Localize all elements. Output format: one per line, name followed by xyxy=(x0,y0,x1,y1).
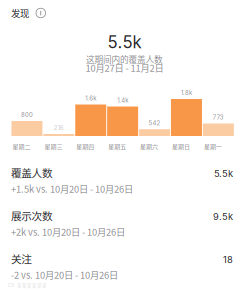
staticText: 星期六 xyxy=(140,142,158,151)
staticText: CF xyxy=(7,282,14,288)
staticText: 某某某某某某 xyxy=(17,282,47,288)
staticText: +1.5k vs. 10月20日 - 10月26日 xyxy=(11,182,133,195)
staticText: 这期间内的覆盖人数 xyxy=(86,53,163,65)
staticText: 星期五 xyxy=(108,142,126,151)
staticText: 星期一 xyxy=(204,142,222,151)
staticText: 展示次数 xyxy=(11,208,53,223)
staticText: 216 xyxy=(54,124,64,131)
staticText: 1.6k xyxy=(85,95,96,102)
staticText: 800 xyxy=(21,111,33,118)
staticText: 773 xyxy=(213,114,224,121)
staticText: -2 vs. 10月20日 - 10月26日 xyxy=(11,268,118,281)
button[interactable]: 发现 xyxy=(11,6,71,20)
button[interactable]: 覆盖人数 xyxy=(0,167,249,193)
staticText: 星期日 xyxy=(172,142,190,151)
staticText: 1.4k xyxy=(117,97,128,104)
staticText: 关注 xyxy=(11,251,32,266)
staticText: 10月27日 - 11月2日 xyxy=(85,61,163,74)
staticText: 5.5k xyxy=(107,32,141,52)
staticText: 1.8k xyxy=(181,89,192,96)
staticText: +2k vs. 10月20日 - 10月26日 xyxy=(11,225,125,238)
staticText: 星期二 xyxy=(12,142,30,151)
staticText: 覆盖人数 xyxy=(11,165,53,180)
staticText: 5.5k xyxy=(214,168,233,179)
button[interactable]: 展示次数 xyxy=(0,210,249,236)
button[interactable]: 关注 xyxy=(0,253,249,279)
staticText: 542 xyxy=(148,119,160,127)
staticText: 发现 xyxy=(11,6,29,20)
staticText: 星期三 xyxy=(44,142,62,151)
staticText: 星期四 xyxy=(76,142,94,151)
staticText: 9.5k xyxy=(213,211,233,222)
staticText: 18 xyxy=(223,254,233,265)
